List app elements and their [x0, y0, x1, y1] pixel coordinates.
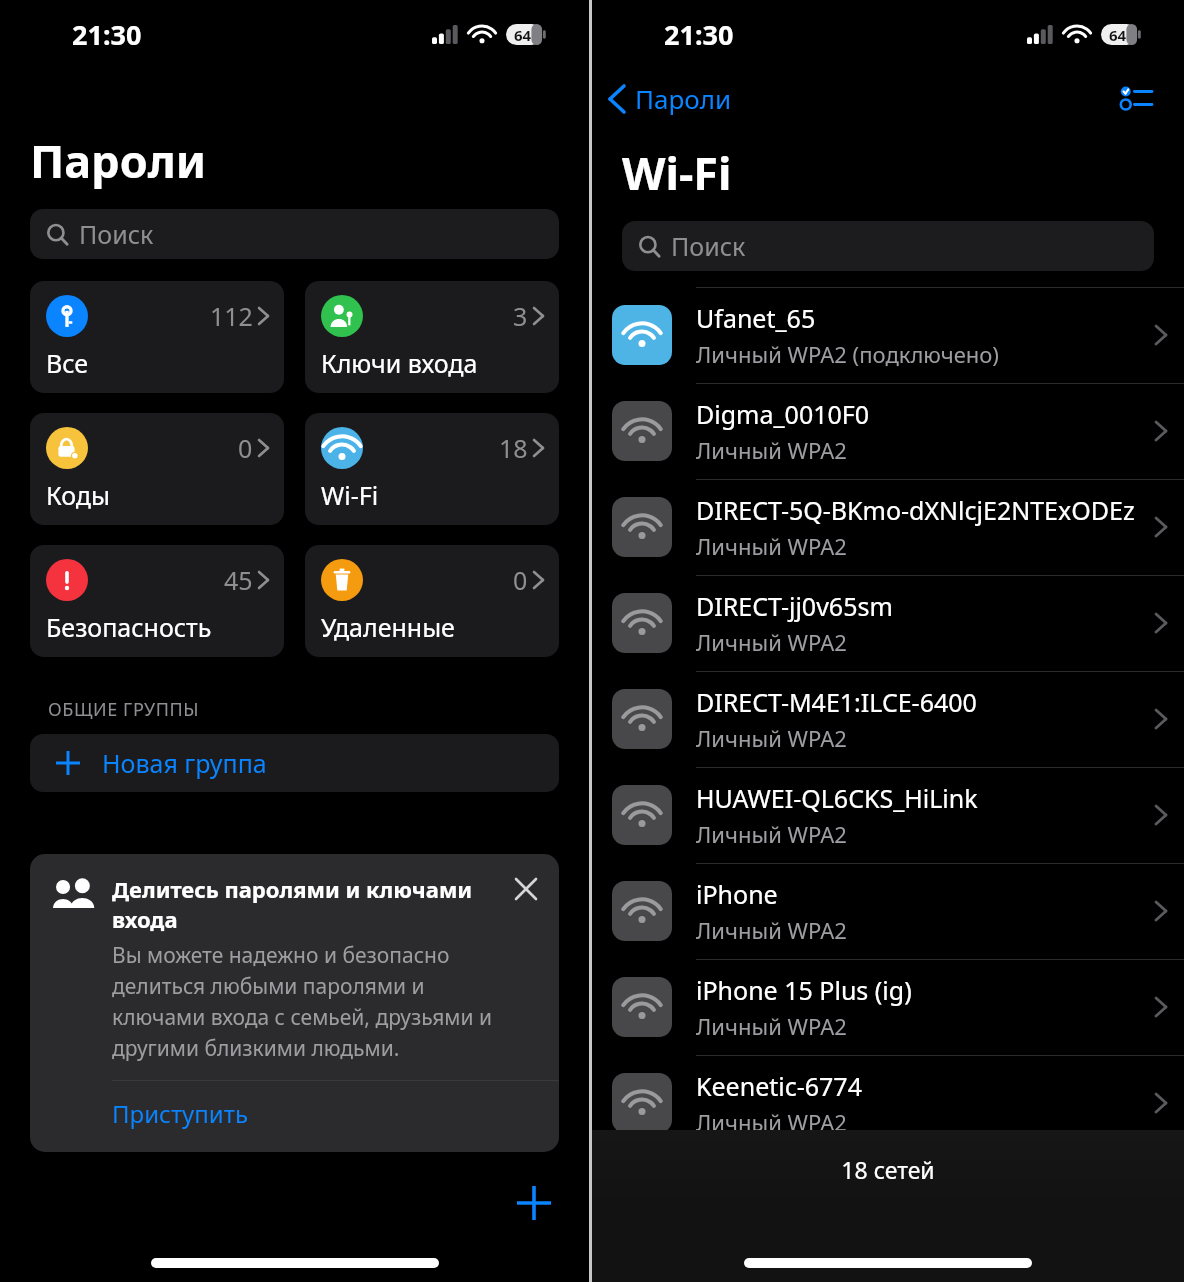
staticText: DIRECT-jj0v65sm — [696, 589, 893, 623]
staticText: Все — [46, 346, 89, 379]
staticText: 112 — [210, 299, 253, 333]
staticText: 18 — [499, 431, 528, 465]
button[interactable]: Пароли — [592, 75, 742, 122]
staticText: Ключи входа — [321, 346, 478, 379]
staticText: Пароли — [30, 130, 206, 191]
button[interactable]: 18 — [305, 413, 559, 525]
button[interactable]: 45 — [30, 545, 284, 657]
staticText: Безопасность — [46, 610, 212, 643]
staticText: Вы можете надежно и безопасно делиться л… — [112, 941, 503, 1062]
button[interactable]: Keenetic-6774 — [592, 1055, 1184, 1151]
staticText: 64 — [514, 25, 532, 45]
staticText: 3 — [513, 299, 528, 333]
staticText: 45 — [224, 563, 253, 597]
staticText: Коды — [46, 478, 110, 511]
button[interactable]: KURTASH — [592, 1151, 1184, 1247]
button[interactable]: 0 — [30, 413, 284, 525]
staticText: Удаленные — [321, 610, 455, 643]
button[interactable]: DIRECT-jj0v65sm — [592, 575, 1184, 671]
staticText: Приступить — [112, 1097, 248, 1130]
button[interactable]: 3 — [305, 281, 559, 393]
button[interactable]: HUAWEI-QL6CKS_HiLink — [592, 767, 1184, 863]
staticText: Личный WPA2 — [696, 723, 847, 753]
staticText: Личный WPA2 — [696, 1107, 847, 1137]
button[interactable]: Сортировка — [1114, 76, 1158, 120]
staticText: Digma_0010F0 — [696, 397, 870, 431]
staticText: Личный WPA2 — [696, 915, 847, 945]
button[interactable]: Поиск — [30, 209, 559, 259]
button[interactable]: Новая группа — [30, 734, 559, 792]
button[interactable]: 0 — [305, 545, 559, 657]
staticText: Wi-Fi — [622, 142, 732, 203]
staticText: DIRECT-5Q-BKmo-dXNlcjE2NTExODEz — [696, 493, 1135, 527]
staticText: DIRECT-M4E1:ILCE-6400 — [696, 685, 977, 719]
staticText: Поиск — [671, 229, 746, 263]
staticText: Поиск — [79, 217, 154, 251]
staticText: Личный WPA2 — [696, 435, 847, 465]
staticText: Личный WPA2 — [696, 627, 847, 657]
staticText: Личный WPA2 — [696, 819, 847, 849]
staticText: Новая группа — [102, 746, 267, 780]
staticText: 64 — [1109, 25, 1127, 45]
staticText: 0 — [238, 431, 253, 465]
staticText: Делитесь паролями и ключами входа — [112, 874, 503, 934]
staticText: Пароли — [635, 81, 732, 116]
button[interactable]: 112 — [30, 281, 284, 393]
staticText: 21:30 — [72, 16, 142, 53]
staticText: Личный WPA2 (подключено) — [696, 339, 999, 369]
button[interactable]: Поиск — [622, 221, 1154, 271]
button[interactable]: DIRECT-5Q-BKmo-dXNlcjE2NTExODEz — [592, 479, 1184, 575]
staticText: Keenetic-6774 — [696, 1069, 862, 1103]
button[interactable]: iPhone — [592, 863, 1184, 959]
staticText: HUAWEI-QL6CKS_HiLink — [696, 781, 978, 815]
staticText: Ufanet_65 — [696, 301, 816, 335]
staticText: iPhone 15 Plus (ig) — [696, 973, 912, 1007]
button[interactable]: iPhone 15 Plus (ig) — [592, 959, 1184, 1055]
staticText: Личный WPA2 — [696, 1011, 847, 1041]
button[interactable]: Закрыть — [511, 874, 541, 904]
staticText: Личный WPA2 — [696, 531, 847, 561]
staticText: ОБЩИЕ ГРУППЫ — [48, 697, 200, 722]
staticText: iPhone — [696, 877, 778, 911]
button[interactable]: Приступить — [30, 1081, 559, 1152]
staticText: 18 сетей — [841, 1154, 935, 1185]
button[interactable]: Добавить пароль — [503, 1172, 565, 1234]
button[interactable]: Ufanet_65 — [592, 287, 1184, 383]
button[interactable]: DIRECT-M4E1:ILCE-6400 — [592, 671, 1184, 767]
staticText: 0 — [513, 563, 528, 597]
button[interactable]: Digma_0010F0 — [592, 383, 1184, 479]
staticText: Wi-Fi — [321, 478, 379, 511]
staticText: 21:30 — [664, 16, 734, 53]
